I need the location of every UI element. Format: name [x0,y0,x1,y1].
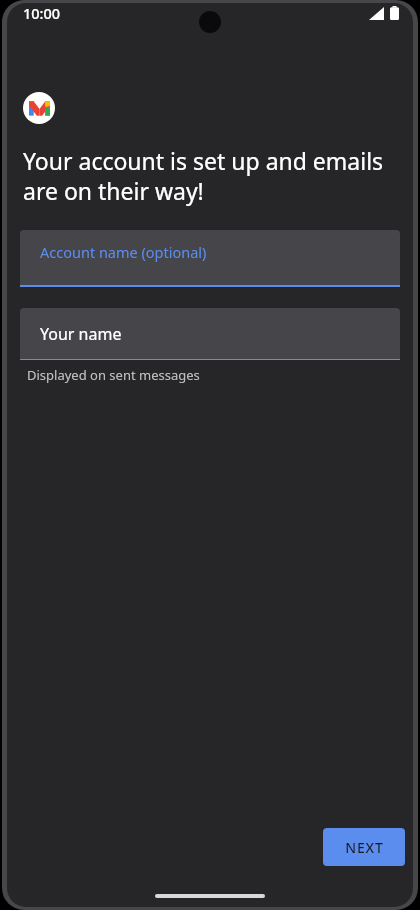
staticText: 10:00 [23,3,61,23]
staticText: Displayed on sent messages [27,366,200,384]
staticText: NEXT [345,838,384,857]
staticText: Your account is set up and emails are on… [23,145,399,207]
button[interactable]: Your name [20,308,400,384]
staticText: Your name [40,323,122,345]
button[interactable]: NEXT [323,828,405,866]
staticText: Account name (optional) [40,242,207,262]
button[interactable]: Account name (optional) [20,230,400,287]
